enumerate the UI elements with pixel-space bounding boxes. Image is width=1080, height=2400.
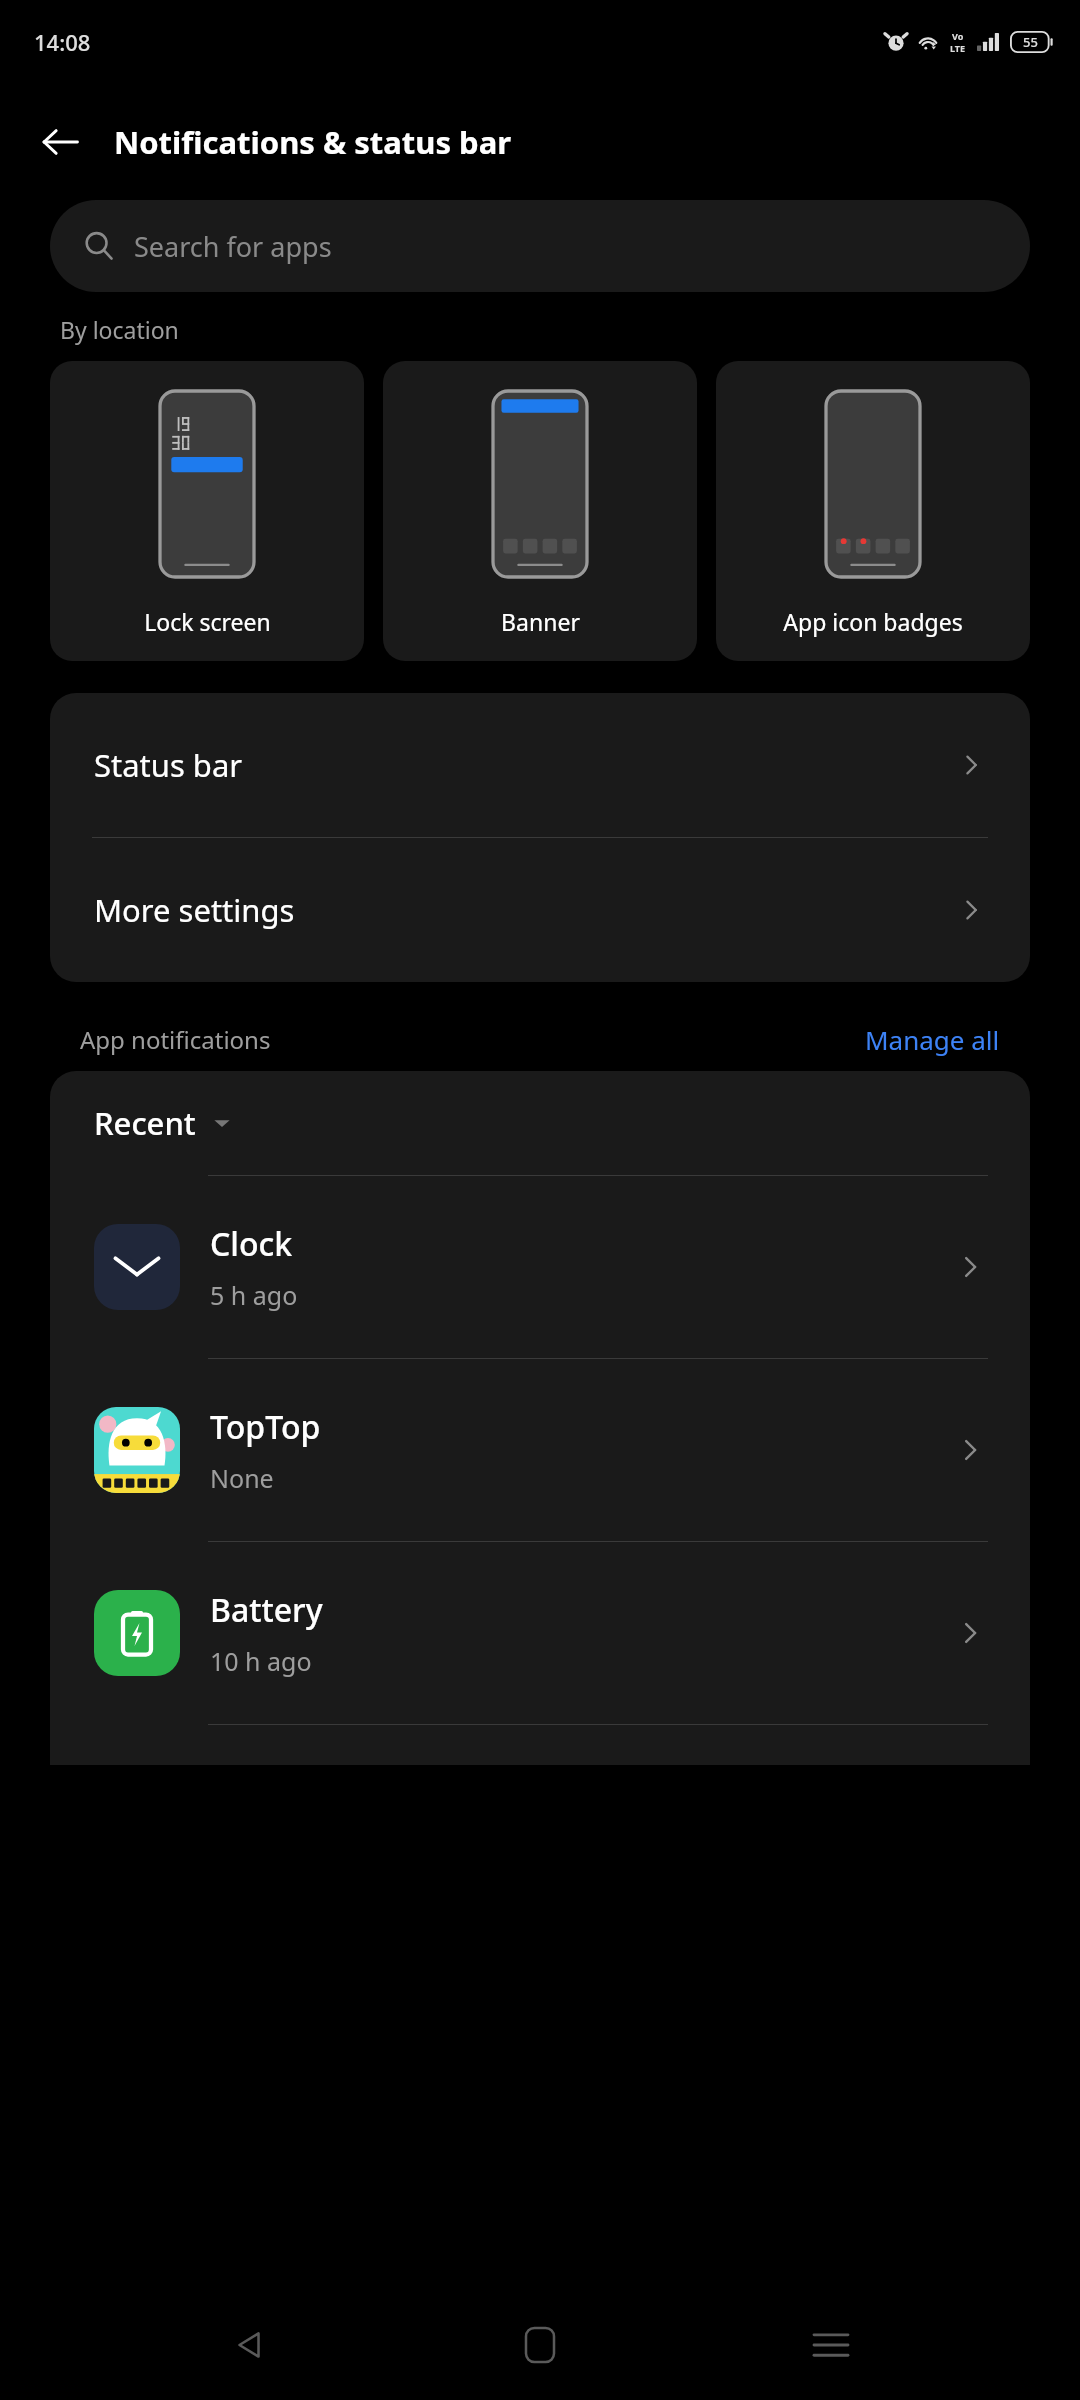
button[interactable]: Clock: [50, 1176, 1030, 1358]
button[interactable]: Status bar: [50, 693, 1030, 837]
staticText: Recent: [94, 1102, 196, 1144]
button[interactable]: Back: [28, 110, 92, 174]
staticText: By location: [60, 314, 179, 345]
staticText: LTE: [950, 42, 966, 54]
button[interactable]: Banner: [383, 361, 697, 661]
button[interactable]: TopTop: [50, 1359, 1030, 1541]
button[interactable]: Home: [498, 2303, 582, 2387]
button[interactable]: Recent apps: [789, 2303, 873, 2387]
staticText: App notifications: [80, 1023, 271, 1056]
button[interactable]: More settings: [50, 838, 1030, 982]
button[interactable]: Manage all: [865, 1022, 1000, 1057]
staticText: None: [210, 1461, 274, 1495]
staticText: TopTop: [210, 1405, 321, 1449]
staticText: 10 h ago: [210, 1644, 312, 1678]
staticText: Clock: [210, 1222, 293, 1266]
staticText: 55: [1023, 33, 1038, 51]
staticText: Battery: [210, 1588, 323, 1632]
staticText: 5 h ago: [210, 1278, 298, 1312]
staticText: Manage all: [865, 1022, 1000, 1057]
staticText: Search for apps: [134, 228, 332, 265]
button[interactable]: App icon badges: [716, 361, 1030, 661]
staticText: App icon badges: [783, 606, 963, 637]
button[interactable]: Recent: [50, 1071, 1030, 1175]
staticText: 14:08: [34, 27, 91, 57]
button[interactable]: Battery: [50, 1542, 1030, 1724]
button[interactable]: Back: [207, 2303, 291, 2387]
staticText: More settings: [94, 889, 295, 931]
staticText: Notifications & status bar: [114, 121, 512, 163]
staticText: Lock screen: [144, 606, 271, 637]
button[interactable]: Search for apps: [50, 200, 1030, 292]
button[interactable]: Lock screen: [50, 361, 364, 661]
staticText: Banner: [501, 606, 580, 637]
staticText: Vo: [952, 30, 964, 42]
staticText: Status bar: [94, 744, 243, 786]
